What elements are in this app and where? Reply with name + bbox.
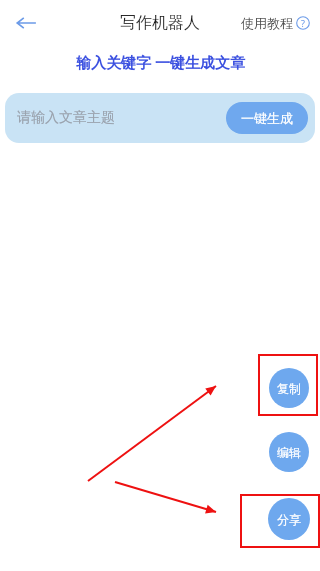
staticText: 写作机器人 <box>120 13 200 33</box>
button[interactable]: Back <box>6 3 46 43</box>
button[interactable]: Copy <box>269 368 309 408</box>
staticText: 请输入文章主题 <box>17 109 115 127</box>
staticText: 一键生成 <box>241 110 293 126</box>
button[interactable]: Share <box>268 498 310 540</box>
staticText: 复制 <box>277 381 301 396</box>
staticText: 输入关键字 一键生成文章 <box>76 52 245 72</box>
staticText: 使用教程 <box>241 15 293 31</box>
button[interactable]: 请输入文章主题 <box>17 109 115 127</box>
button[interactable]: 使用教程 <box>237 9 314 37</box>
button[interactable]: Edit <box>269 432 309 472</box>
staticText: 分享 <box>277 512 301 527</box>
staticText: 编辑 <box>277 445 301 460</box>
button[interactable]: 一键生成 <box>226 102 308 134</box>
staticText: ? <box>301 17 305 29</box>
